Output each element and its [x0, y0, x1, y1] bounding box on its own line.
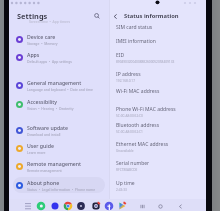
staticText: Storage • Memory [27, 41, 58, 46]
button[interactable]: App drawer [23, 201, 33, 211]
button[interactable]: IP address [110, 70, 206, 84]
staticText: RFCT80ABCDE [116, 168, 138, 172]
button[interactable]: Search [92, 11, 102, 21]
button[interactable]: User guide [13, 140, 105, 156]
staticText: Unavailable [116, 149, 134, 153]
staticText: Screen time • App timers [29, 19, 71, 24]
staticText: Software update [27, 124, 69, 131]
staticText: Settings [17, 11, 48, 21]
staticText: Device care [27, 33, 56, 40]
button[interactable]: General management [13, 77, 105, 93]
staticText: Bluetooth address [116, 122, 160, 129]
staticText: 192.168.0.17 [116, 79, 135, 83]
button[interactable]: Back [111, 12, 120, 21]
button[interactable]: Phone Wi-Fi MAC address [110, 105, 206, 119]
button[interactable]: About phone [13, 177, 105, 193]
button[interactable]: Serial number [110, 159, 206, 173]
button[interactable]: Bluetooth address [110, 121, 206, 135]
staticText: General management [27, 79, 82, 86]
button[interactable]: Samsung Internet [50, 201, 60, 211]
staticText: EID [116, 52, 125, 59]
staticText: Phone Wi-Fi MAC address [116, 106, 176, 113]
staticText: Serial number [116, 160, 150, 167]
staticText: 5C:0C:A8:00:52:C1 [116, 130, 143, 134]
staticText: Status • Legal information • Phone name [27, 187, 96, 192]
staticText: Default apps • App settings [27, 59, 72, 64]
button[interactable]: Back [175, 201, 185, 211]
staticText: Remote management [27, 160, 82, 167]
staticText: Apps [27, 51, 40, 58]
button[interactable]: SIM card status [110, 23, 206, 37]
button[interactable]: Device care [13, 31, 105, 47]
staticText: Remote management [27, 168, 62, 173]
staticText: Download and install [27, 132, 61, 137]
button[interactable]: Clock [76, 201, 86, 211]
staticText: Language and keyboard • Date and time [27, 87, 93, 92]
button[interactable]: Accessibility [13, 96, 105, 112]
staticText: 2:43:33 [116, 188, 127, 192]
staticText: 5C:0C:A8:00:52:C0 [116, 114, 143, 118]
staticText: Learn more [27, 150, 46, 155]
button[interactable]: Remote management [13, 158, 105, 174]
button[interactable]: Wi-Fi MAC address [110, 87, 206, 101]
button[interactable]: Chrome [63, 201, 73, 211]
staticText: Accessibility [27, 98, 58, 105]
staticText: Wi-Fi MAC address [116, 88, 160, 95]
staticText: 89049032004008882600052058409133 [116, 60, 175, 64]
button[interactable]: Home [155, 201, 165, 211]
button[interactable]: Ethernet MAC address [110, 140, 206, 154]
button[interactable]: Apps [13, 49, 105, 65]
staticText: Status information [124, 12, 179, 20]
staticText: Up time [116, 180, 135, 187]
staticText: IP address [116, 71, 141, 78]
button[interactable]: Play Store [117, 201, 127, 211]
button[interactable]: Software update [13, 122, 105, 138]
staticText: User guide [27, 142, 54, 149]
button[interactable]: EID [110, 51, 206, 65]
button[interactable]: Facebook [104, 201, 114, 211]
button[interactable]: Camera [91, 201, 101, 211]
button[interactable]: Phone [36, 201, 46, 211]
staticText: Vision • Hearing • Dexterity [27, 106, 74, 111]
staticText: IMEI information [116, 38, 156, 45]
button[interactable]: Recent apps [137, 201, 147, 211]
button[interactable]: Up time [110, 179, 206, 193]
staticText: About phone [27, 179, 60, 186]
staticText: Ethernet MAC address [116, 141, 169, 148]
staticText: SIM card status [116, 24, 153, 31]
button[interactable]: IMEI information [110, 37, 206, 51]
